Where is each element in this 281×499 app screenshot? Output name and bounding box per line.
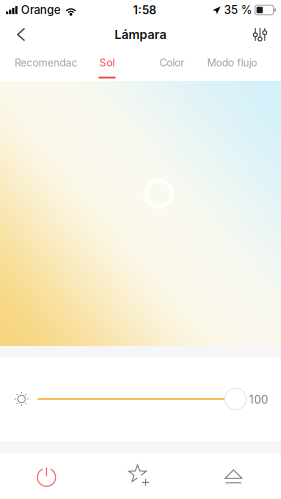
- button[interactable]: Color: [122, 49, 222, 81]
- staticText: 1:58: [133, 3, 156, 17]
- staticText: Recomendac: [14, 57, 77, 69]
- staticText: 35 %: [224, 3, 252, 17]
- button[interactable]: Power: [0, 453, 93, 499]
- staticText: Sol: [99, 57, 114, 69]
- button[interactable]: Brightness: [37, 384, 247, 414]
- button[interactable]: Recomendac: [0, 49, 92, 81]
- staticText: Color: [159, 57, 184, 69]
- staticText: Lámpara: [114, 27, 166, 42]
- staticText: Orange: [21, 3, 61, 17]
- button[interactable]: Sol: [92, 49, 122, 81]
- button[interactable]: Light settings: [239, 20, 281, 49]
- button[interactable]: Back: [0, 20, 42, 49]
- button[interactable]: Share: [186, 453, 281, 499]
- staticText: Modo flujo: [207, 57, 257, 69]
- button[interactable]: Selected colour temperature: [139, 173, 179, 213]
- staticText: 100: [249, 393, 268, 407]
- button[interactable]: Modo flujo: [182, 49, 281, 81]
- button[interactable]: Add to favorites: [93, 453, 186, 499]
